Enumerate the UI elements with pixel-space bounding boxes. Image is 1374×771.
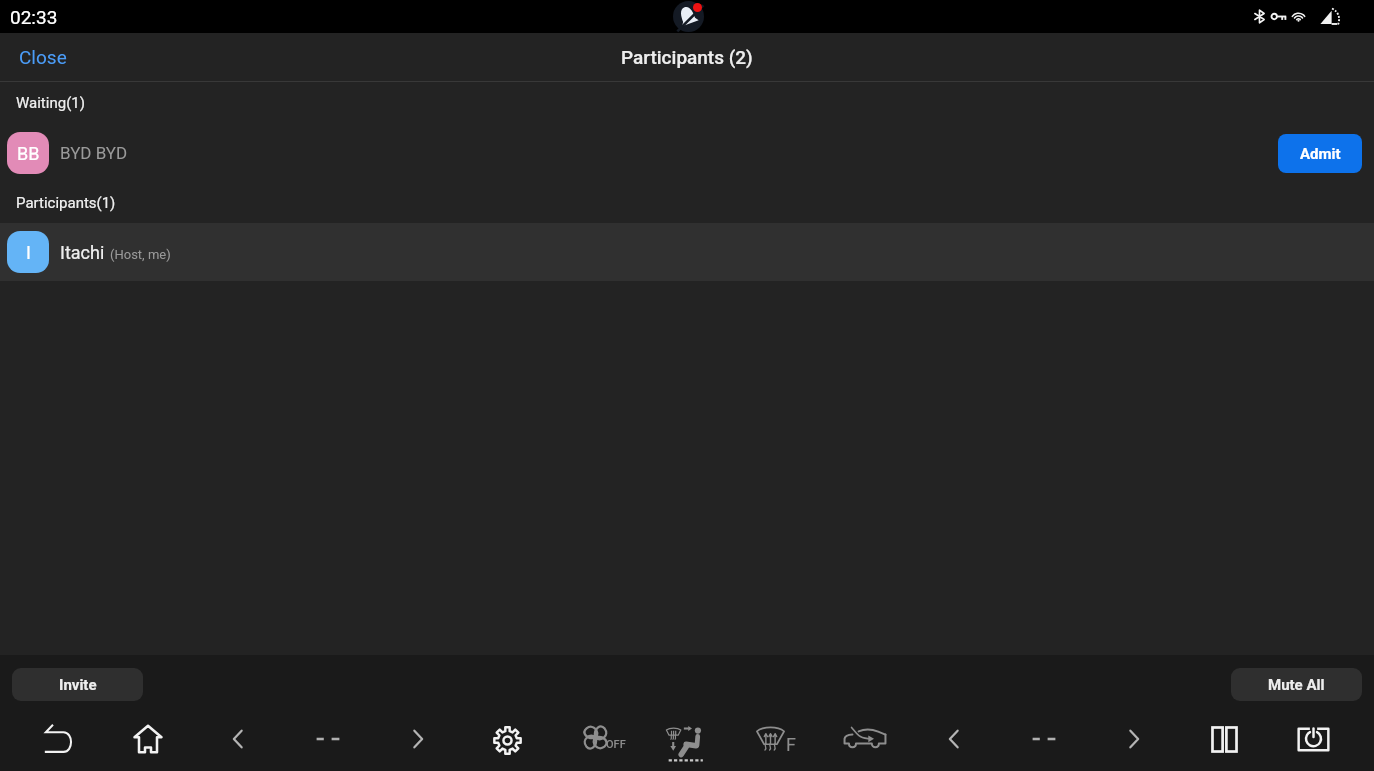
staticText: Close xyxy=(19,46,67,68)
staticText: Invite xyxy=(59,676,97,694)
button[interactable]: I xyxy=(0,223,1374,281)
button[interactable]: Mute All xyxy=(1231,668,1362,701)
staticText: OFF xyxy=(606,738,626,751)
staticText: Participants (2) xyxy=(621,46,753,68)
staticText: Admit xyxy=(1300,145,1341,163)
staticText: Waiting(1) xyxy=(16,94,85,112)
button[interactable]: Close xyxy=(0,33,86,81)
button[interactable]: Fan off xyxy=(575,713,633,771)
staticText: Mute All xyxy=(1268,676,1325,694)
button[interactable]: Home xyxy=(124,713,172,771)
button[interactable]: Screen off xyxy=(1289,713,1337,771)
button[interactable]: Seat climate xyxy=(661,713,709,771)
button[interactable]: Previous xyxy=(930,713,978,771)
button[interactable]: Temperature xyxy=(1020,713,1068,771)
staticText: F xyxy=(786,734,796,755)
button[interactable]: Back xyxy=(35,713,83,771)
staticText: BYD BYD xyxy=(60,143,128,163)
button[interactable]: Track xyxy=(304,713,352,771)
button[interactable]: Next xyxy=(1110,713,1158,771)
button[interactable]: Split screen xyxy=(1200,713,1248,771)
staticText: (Host, me) xyxy=(110,247,171,262)
button[interactable]: Air recirculation xyxy=(841,713,889,771)
button[interactable]: Admit xyxy=(1278,134,1362,173)
button[interactable]: BB xyxy=(0,124,1374,182)
button[interactable]: Invite xyxy=(12,668,143,701)
staticText: Participants(1) xyxy=(16,194,116,212)
staticText: Itachi xyxy=(60,242,105,263)
button[interactable]: Previous track xyxy=(214,713,262,771)
staticText: BB xyxy=(17,143,40,164)
button[interactable]: Settings xyxy=(483,713,531,771)
button[interactable]: Front defrost xyxy=(755,713,811,771)
staticText: 02:33 xyxy=(10,6,58,28)
button[interactable]: Next track xyxy=(394,713,442,771)
staticText: I xyxy=(26,242,31,263)
